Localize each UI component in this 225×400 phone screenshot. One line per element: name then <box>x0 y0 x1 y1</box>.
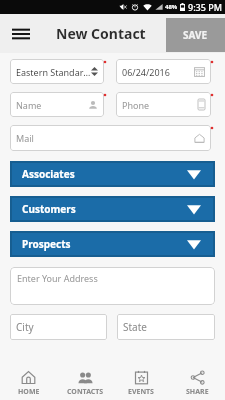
button[interactable]: Eastern Standard.. <box>10 59 104 84</box>
staticText: CONTACTS <box>67 387 104 397</box>
staticText: SHARE <box>186 387 209 397</box>
staticText: Phone <box>122 99 198 111</box>
button[interactable]: State <box>117 314 215 340</box>
staticText: EVENTS <box>128 387 154 397</box>
button[interactable]: City <box>10 314 107 340</box>
staticText: HOME <box>18 387 40 397</box>
staticText: City <box>16 320 101 334</box>
staticText: SAVE <box>183 28 208 42</box>
button[interactable]: SAVE <box>166 18 225 52</box>
button[interactable]: Phone <box>116 92 211 117</box>
staticText: Associates <box>22 167 75 181</box>
button[interactable]: SHARE <box>169 366 225 400</box>
staticText: State <box>123 320 209 334</box>
staticText: Name <box>16 99 88 111</box>
button[interactable]: Associates <box>12 163 213 185</box>
staticText: 06/24/2016 <box>122 66 194 78</box>
button[interactable]: Mail <box>10 125 211 151</box>
button[interactable]: EVENTS <box>113 366 169 400</box>
staticText: Enter Your Address <box>17 272 98 284</box>
button[interactable]: Name <box>10 92 104 117</box>
staticText: 9:35 PM <box>188 1 222 13</box>
staticText: Customers <box>22 202 76 216</box>
staticText: Eastern Standard.. <box>16 66 91 78</box>
staticText: Prospects <box>22 237 71 251</box>
button[interactable]: Menu <box>8 21 34 47</box>
staticText: 48% <box>165 3 178 11</box>
button[interactable]: Enter Your Address <box>10 267 215 305</box>
button[interactable]: HOME <box>0 366 57 400</box>
button[interactable]: 06/24/2016 <box>116 59 211 84</box>
button[interactable]: CONTACTS <box>57 366 113 400</box>
staticText: New Contact <box>56 24 146 43</box>
staticText: Mail <box>16 132 194 144</box>
button[interactable]: Customers <box>12 198 213 220</box>
button[interactable]: Prospects <box>12 233 213 255</box>
